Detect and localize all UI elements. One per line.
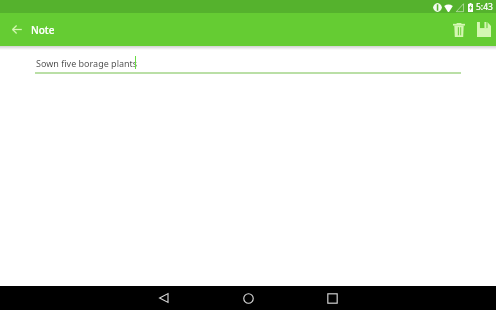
button[interactable]: Navigate up [4,13,29,46]
button[interactable]: Delete [446,13,472,46]
staticText: Sown five borage plants [36,57,138,69]
button[interactable]: Save [472,13,496,46]
staticText: Note [31,23,55,37]
staticText: 5:43 [476,1,493,13]
button[interactable]: Recent apps [318,286,346,310]
button[interactable]: Back [150,286,178,310]
button[interactable]: Home [234,286,262,310]
